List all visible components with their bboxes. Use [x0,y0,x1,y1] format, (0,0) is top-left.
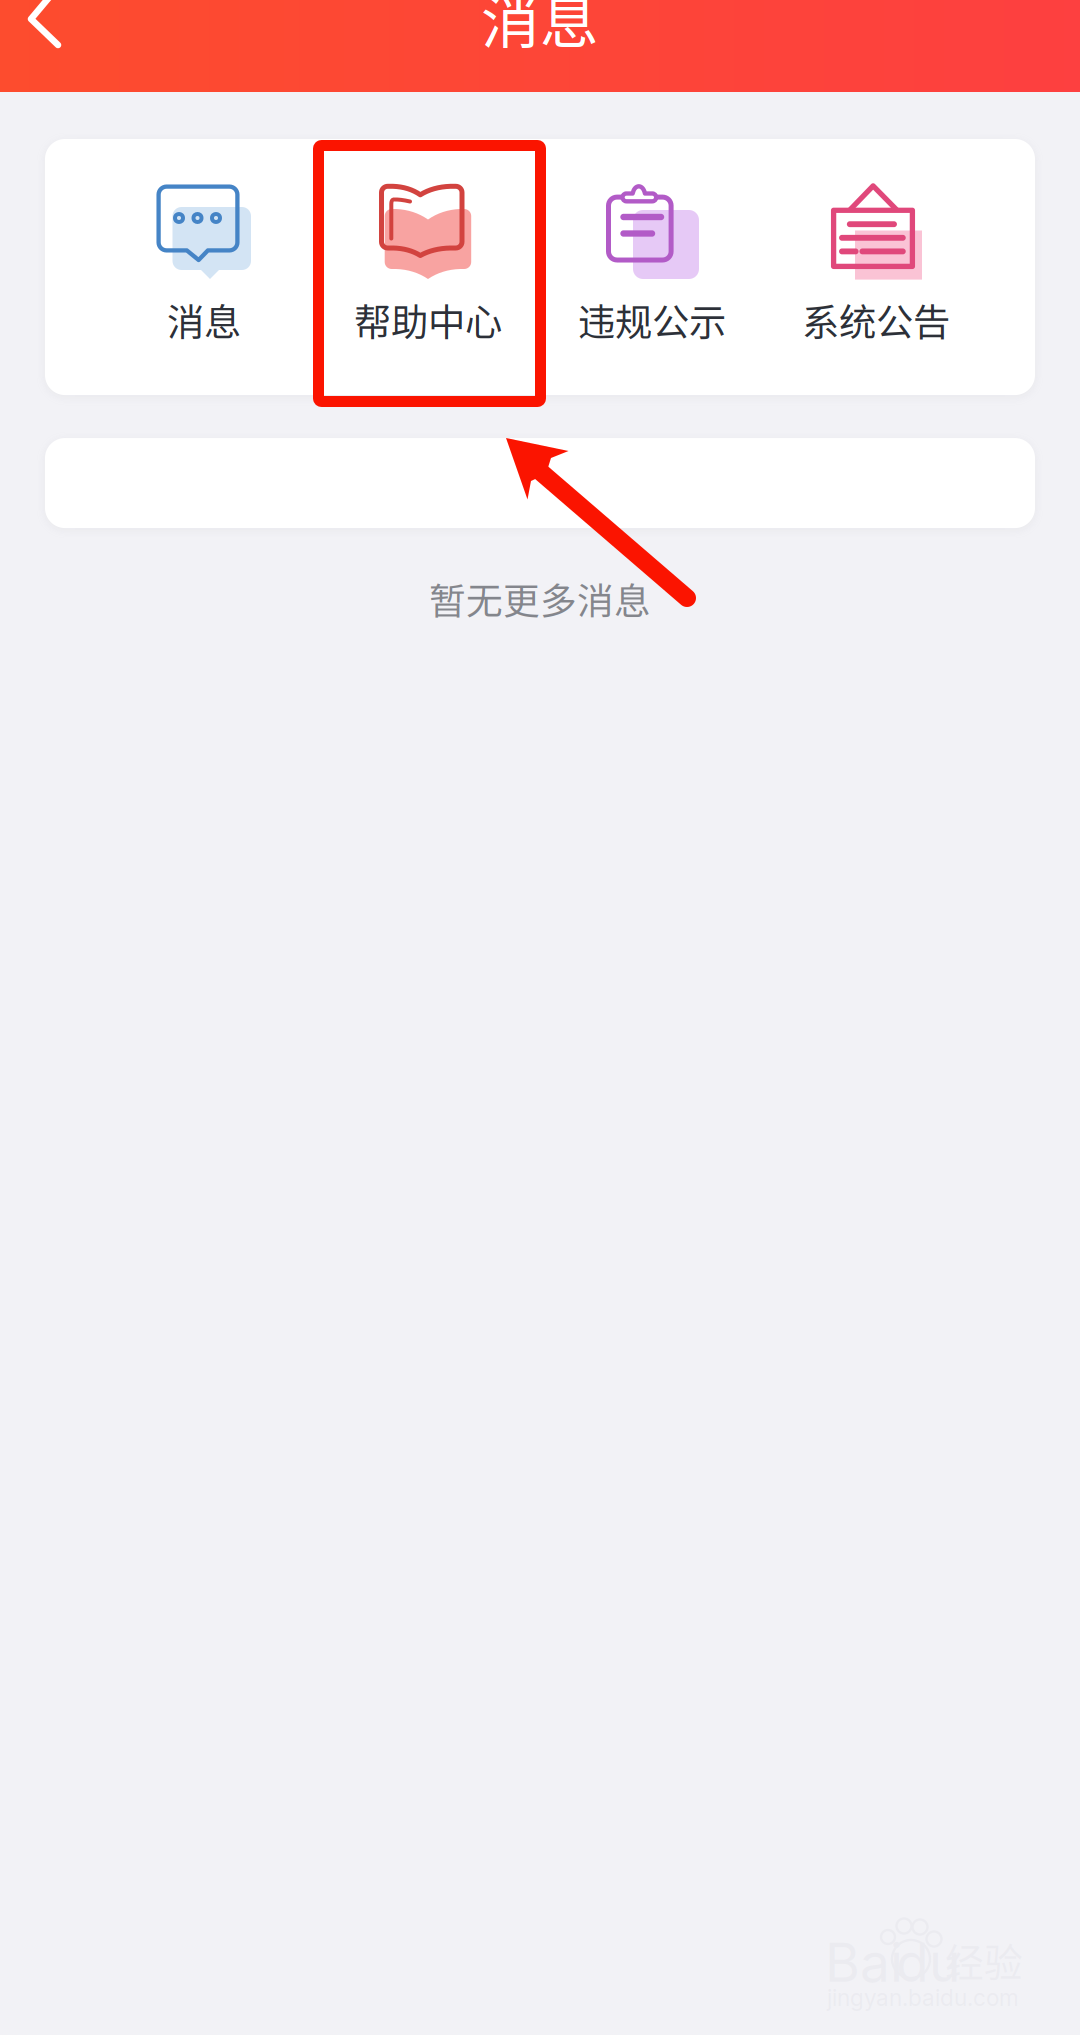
button[interactable]: 消息 [92,184,316,347]
button[interactable]: 返回 [0,0,104,92]
staticText: du [896,1930,961,1994]
button[interactable]: 系统公告 [764,184,988,347]
button[interactable]: 违规公示 [540,184,764,347]
staticText: 暂无更多消息 [429,572,651,625]
button[interactable]: 帮助中心 [316,184,540,347]
staticText: 帮助中心 [354,293,502,347]
staticText: 违规公示 [578,293,726,347]
staticText: 消息 [167,293,241,347]
staticText: 系统公告 [802,293,950,347]
staticText: 消息 [481,0,599,60]
